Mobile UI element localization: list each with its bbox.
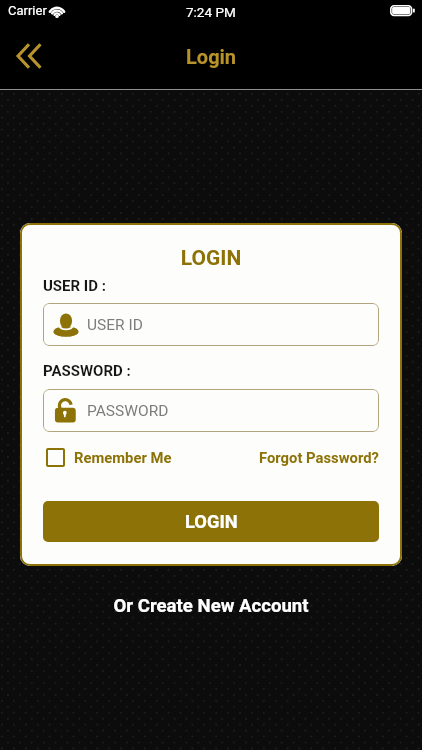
staticText: Login bbox=[186, 45, 237, 68]
staticText: Carrier bbox=[8, 3, 47, 18]
staticText: PASSWORD bbox=[87, 402, 169, 420]
staticText: 7:24 PM bbox=[186, 4, 236, 20]
button[interactable]: LOGIN bbox=[43, 501, 379, 542]
other: Battery full bbox=[390, 5, 415, 18]
button[interactable]: Back bbox=[7, 34, 51, 78]
button[interactable]: USER ID bbox=[43, 303, 379, 346]
staticText: Remember Me bbox=[74, 449, 172, 466]
other: Wi-Fi bbox=[48, 5, 66, 17]
staticText: USER ID : bbox=[43, 277, 106, 295]
button[interactable]: PASSWORD bbox=[43, 389, 379, 432]
staticText: USER ID bbox=[87, 316, 143, 334]
staticText: PASSWORD : bbox=[43, 362, 131, 380]
staticText: LOGIN bbox=[20, 246, 402, 271]
button[interactable]: Forgot Password? bbox=[259, 449, 379, 466]
staticText: LOGIN bbox=[185, 511, 238, 532]
button[interactable]: Or Create New Account bbox=[0, 595, 422, 617]
button[interactable]: Remember Me bbox=[43, 448, 172, 467]
